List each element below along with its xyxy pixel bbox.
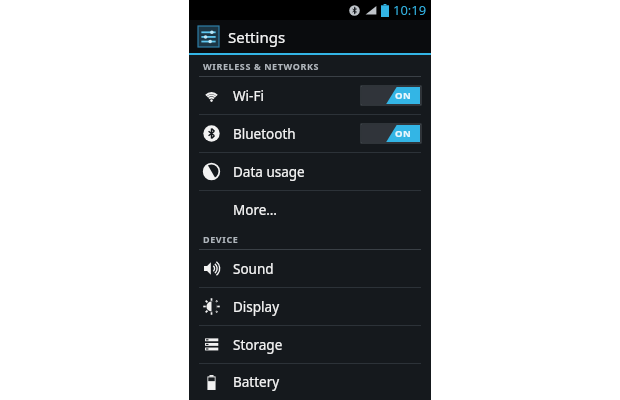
staticText: Settings: [228, 27, 286, 47]
staticText: Display: [233, 298, 280, 316]
staticText: Storage: [233, 336, 283, 354]
button[interactable]: More…: [189, 191, 431, 228]
button[interactable]: Display: [189, 288, 431, 325]
button[interactable]: Sound: [189, 250, 431, 287]
staticText: ON: [395, 89, 412, 102]
staticText: Data usage: [233, 163, 305, 181]
button[interactable]: Bluetooth toggle, on: [361, 124, 421, 143]
staticText: Sound: [233, 260, 274, 278]
staticText: Battery: [233, 373, 280, 391]
button[interactable]: Storage: [189, 326, 431, 363]
staticText: More…: [233, 201, 278, 219]
staticText: Wi-Fi: [233, 87, 264, 105]
staticText: DEVICE: [203, 233, 239, 245]
staticText: Bluetooth: [233, 125, 296, 143]
button[interactable]: Battery: [189, 364, 431, 400]
staticText: 10:19: [393, 1, 427, 19]
staticText: ON: [395, 127, 412, 140]
button[interactable]: Wi-Fi: [189, 77, 431, 114]
button[interactable]: Wi-Fi toggle, on: [361, 86, 421, 105]
button[interactable]: Data usage: [189, 153, 431, 190]
staticText: WIRELESS & NETWORKS: [203, 60, 320, 72]
button[interactable]: Bluetooth: [189, 115, 431, 152]
